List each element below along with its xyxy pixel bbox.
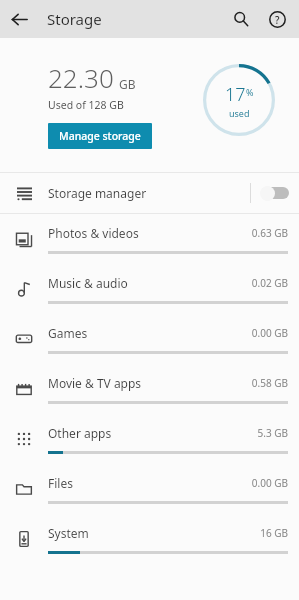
staticText: 0.00 GB [251,476,288,490]
staticText: 17 [225,82,246,107]
button[interactable]: Music & audio [0,264,299,314]
staticText: Manage storage [59,129,141,143]
button[interactable]: Games [0,314,299,364]
staticText: Storage [47,9,102,29]
button[interactable]: Other apps [0,414,299,464]
staticText: 5.3 GB [257,426,288,440]
staticText: ? [275,13,280,27]
staticText: Storage manager [48,185,147,201]
staticText: GB [119,76,136,92]
button[interactable]: Movie & TV apps [0,364,299,414]
button[interactable]: Search [223,1,259,37]
staticText: Other apps [48,425,112,441]
staticText: % [246,86,254,98]
button[interactable]: Files [0,464,299,514]
button[interactable]: Manage storage [48,123,152,149]
staticText: used [229,107,250,119]
staticText: Music & audio [48,275,128,291]
staticText: Files [48,475,73,491]
staticText: 0.58 GB [251,376,288,390]
staticText: 0.63 GB [251,226,288,240]
button[interactable]: Back [0,0,38,38]
staticText: System [48,525,89,541]
staticText: 16 GB [260,526,288,540]
button[interactable]: Help [259,1,295,37]
staticText: Movie & TV apps [48,375,142,391]
staticText: 22.30 [48,60,114,95]
staticText: 0.00 GB [251,326,288,340]
button[interactable]: Photos & videos [0,214,299,264]
staticText: Games [48,325,88,341]
button[interactable]: Storage manager [0,173,299,213]
staticText: Photos & videos [48,225,139,241]
staticText: Used of 128 GB [48,98,124,112]
button[interactable]: Storage manager toggle [251,173,299,213]
staticText: 0.02 GB [251,276,288,290]
button[interactable]: System [0,514,299,564]
